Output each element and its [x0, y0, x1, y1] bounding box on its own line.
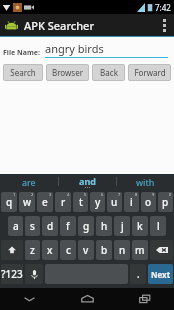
button[interactable]: h	[96, 216, 112, 236]
button[interactable]: s	[25, 216, 40, 236]
staticText: o	[145, 195, 152, 209]
staticText: v	[83, 243, 89, 257]
staticText: with	[136, 176, 155, 188]
button[interactable]: Browser	[46, 64, 89, 81]
staticText: c	[66, 243, 71, 257]
button[interactable]: q	[1, 192, 17, 212]
staticText: j	[121, 219, 124, 233]
staticText: APK Searcher	[24, 18, 95, 33]
staticText: 2	[31, 192, 34, 197]
staticText: l	[157, 219, 160, 233]
staticText: .	[137, 267, 140, 281]
staticText: 9	[152, 192, 155, 197]
button[interactable]: b	[96, 240, 112, 260]
button[interactable]: Forward	[128, 64, 171, 81]
staticText: h	[101, 219, 108, 233]
button[interactable]: i	[124, 192, 139, 212]
button[interactable]: ?123	[1, 264, 23, 284]
staticText: and	[79, 175, 96, 187]
staticText: t	[79, 195, 83, 209]
button[interactable]: and	[59, 174, 116, 189]
button[interactable]: Home	[58, 288, 116, 310]
staticText: e	[42, 195, 48, 209]
staticText: y	[95, 195, 101, 209]
button[interactable]: y	[90, 192, 105, 212]
button[interactable]: x	[42, 240, 58, 260]
staticText: Forward	[134, 67, 166, 78]
button[interactable]: n	[114, 240, 130, 260]
button[interactable]: f	[60, 216, 76, 236]
staticText: 1	[13, 192, 16, 197]
button[interactable]: m	[132, 240, 148, 260]
button[interactable]: Hide keyboard	[0, 288, 58, 310]
button[interactable]: Recent apps	[116, 288, 174, 310]
staticText: g	[83, 219, 90, 233]
staticText: 7:42	[155, 2, 171, 13]
button[interactable]: z	[25, 240, 40, 260]
button[interactable]: d	[42, 216, 58, 236]
staticText: r	[61, 195, 66, 209]
button[interactable]: l	[150, 216, 166, 236]
button[interactable]: Voice input	[25, 264, 43, 284]
staticText: Search	[10, 67, 36, 78]
staticText: b	[101, 243, 108, 257]
button[interactable]: w	[19, 192, 35, 212]
staticText: x	[47, 243, 53, 257]
button[interactable]: k	[132, 216, 148, 236]
button[interactable]: t	[73, 192, 88, 212]
staticText: n	[119, 243, 126, 257]
staticText: 8	[135, 192, 138, 197]
staticText: Back	[100, 67, 118, 78]
staticText: 5	[84, 192, 87, 197]
staticText: 6	[101, 192, 104, 197]
staticText: 7	[118, 192, 121, 197]
button[interactable]: e	[37, 192, 53, 212]
button[interactable]: Shift	[1, 240, 23, 260]
button[interactable]: Search	[3, 64, 43, 81]
button[interactable]: r	[55, 192, 71, 212]
staticText: 3	[49, 192, 52, 197]
button[interactable]: j	[114, 216, 130, 236]
staticText: k	[137, 219, 143, 233]
button[interactable]: v	[78, 240, 94, 260]
staticText: w	[23, 195, 32, 209]
staticText: u	[111, 195, 118, 209]
button[interactable]: Backspace	[150, 240, 173, 260]
staticText: i	[130, 195, 133, 209]
button[interactable]: with	[117, 174, 174, 189]
button[interactable]: angry birds	[45, 41, 168, 58]
button[interactable]: are	[0, 174, 58, 189]
button[interactable]: u	[107, 192, 122, 212]
button[interactable]: a	[8, 216, 23, 236]
button[interactable]: .	[130, 264, 146, 284]
staticText: p	[162, 195, 169, 209]
staticText: 4	[67, 192, 70, 197]
staticText: ?123	[1, 267, 23, 281]
staticText: are	[22, 176, 36, 188]
staticText: File Name:	[3, 48, 40, 58]
button[interactable]: g	[78, 216, 94, 236]
button[interactable]: p	[158, 192, 173, 212]
button[interactable]: Back	[92, 64, 125, 81]
button[interactable]: c	[60, 240, 76, 260]
staticText: d	[47, 219, 54, 233]
staticText: Next	[151, 269, 171, 280]
staticText: Browser	[52, 67, 83, 78]
button[interactable]: More options	[154, 14, 174, 36]
staticText: s	[30, 219, 35, 233]
staticText: m	[135, 243, 145, 257]
staticText: 0	[169, 192, 172, 197]
staticText: q	[6, 195, 13, 209]
button[interactable]: Next	[148, 264, 173, 284]
staticText: angry birds	[45, 41, 104, 56]
staticText: z	[30, 243, 35, 257]
staticText: a	[13, 219, 19, 233]
button[interactable]: o	[141, 192, 156, 212]
staticText: f	[66, 219, 70, 233]
